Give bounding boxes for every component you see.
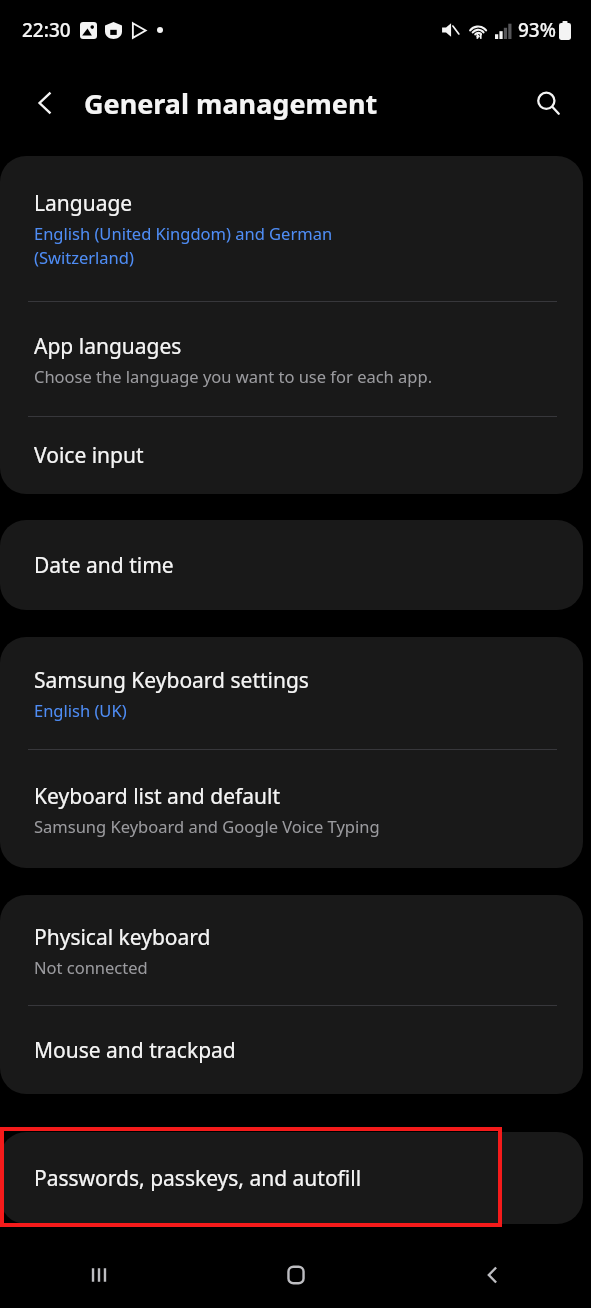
staticText: 22:30	[22, 17, 71, 43]
button[interactable]: Home	[197, 1242, 394, 1308]
button[interactable]: Back	[394, 1242, 591, 1308]
button[interactable]: Date and time	[0, 520, 583, 610]
staticText: English (UK)	[34, 699, 127, 721]
staticText: App languages	[34, 332, 182, 361]
staticText: 93%	[518, 17, 556, 43]
staticText: Keyboard list and default	[34, 782, 280, 811]
staticText: Physical keyboard	[34, 923, 211, 952]
button[interactable]: Mouse and trackpad	[0, 1006, 583, 1094]
button[interactable]: Passwords, passkeys, and autofill	[0, 1132, 583, 1224]
button[interactable]: Language	[0, 156, 583, 301]
button[interactable]: Samsung Keyboard settings	[0, 637, 583, 749]
button[interactable]: App languages	[0, 302, 583, 416]
button[interactable]: Physical keyboard	[0, 895, 583, 1005]
staticText: General management	[84, 85, 378, 122]
staticText: Samsung Keyboard and Google Voice Typing	[34, 815, 380, 837]
staticText: Date and time	[34, 551, 174, 580]
button[interactable]: Recent apps	[0, 1242, 197, 1308]
staticText: English (United Kingdom) and German (Swi…	[34, 222, 333, 269]
button[interactable]: Search	[524, 79, 572, 127]
staticText: Samsung Keyboard settings	[34, 666, 309, 695]
staticText: Passwords, passkeys, and autofill	[34, 1164, 362, 1193]
staticText: Not connected	[34, 956, 148, 978]
staticText: Choose the language you want to use for …	[34, 365, 433, 387]
button[interactable]: Keyboard list and default	[0, 750, 583, 868]
staticText: Language	[34, 189, 133, 218]
staticText: Mouse and trackpad	[34, 1036, 236, 1065]
button[interactable]: Voice input	[0, 417, 583, 494]
staticText: Voice input	[34, 441, 144, 470]
button[interactable]: Navigate up	[22, 79, 70, 127]
